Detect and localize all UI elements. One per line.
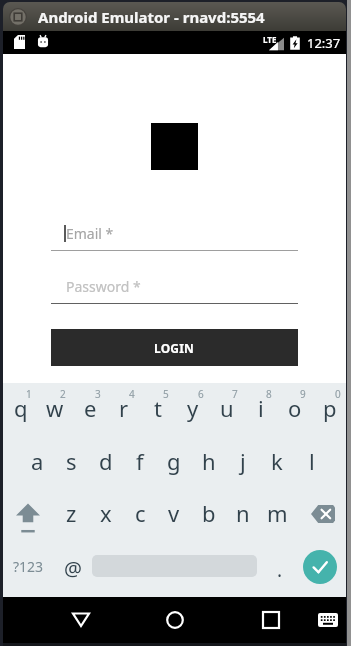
- button[interactable]: d: [89, 436, 123, 490]
- button[interactable]: Recents: [250, 599, 292, 641]
- button[interactable]: Show keyboard: [309, 604, 347, 636]
- staticText: ?123: [13, 557, 44, 576]
- staticText: v: [168, 498, 180, 528]
- staticText: 6: [198, 387, 204, 401]
- staticText: 9: [300, 387, 306, 401]
- button[interactable]: b: [192, 490, 226, 543]
- staticText: e: [84, 393, 97, 423]
- button[interactable]: h: [192, 436, 226, 490]
- staticText: r: [119, 393, 129, 423]
- button[interactable]: x: [89, 490, 123, 543]
- staticText: s: [66, 446, 77, 476]
- staticText: 3: [95, 387, 101, 401]
- button[interactable]: 2: [37, 383, 71, 436]
- button[interactable]: @: [55, 543, 89, 597]
- button[interactable]: l: [295, 436, 329, 490]
- button[interactable]: Back: [60, 598, 102, 640]
- button[interactable]: Window menu: [9, 8, 27, 26]
- staticText: LOGIN: [154, 340, 195, 356]
- staticText: n: [236, 498, 250, 528]
- button[interactable]: Enter: [303, 550, 337, 584]
- button[interactable]: Shift: [3, 490, 54, 543]
- staticText: g: [167, 446, 181, 476]
- staticText: 4: [129, 387, 135, 401]
- staticText: h: [202, 446, 216, 476]
- staticText: j: [240, 446, 246, 476]
- staticText: LTE: [263, 34, 277, 45]
- staticText: t: [154, 393, 162, 423]
- button[interactable]: s: [54, 436, 88, 490]
- staticText: 0: [335, 387, 341, 401]
- button[interactable]: .: [261, 543, 299, 597]
- staticText: u: [220, 393, 234, 423]
- staticText: 12:37: [307, 34, 341, 52]
- button[interactable]: v: [157, 490, 191, 543]
- staticText: k: [271, 446, 283, 476]
- staticText: p: [323, 393, 337, 423]
- button[interactable]: f: [123, 436, 157, 490]
- button[interactable]: ?123: [8, 543, 54, 597]
- button[interactable]: Backspace: [295, 490, 346, 543]
- staticText: w: [46, 393, 64, 423]
- button[interactable]: 6: [175, 383, 209, 436]
- button[interactable]: n: [226, 490, 260, 543]
- staticText: d: [99, 446, 113, 476]
- button[interactable]: a: [20, 436, 54, 490]
- staticText: b: [202, 498, 216, 528]
- staticText: y: [187, 393, 199, 423]
- button[interactable]: 5: [140, 383, 174, 436]
- staticText: m: [267, 498, 288, 528]
- staticText: .: [277, 557, 283, 583]
- button[interactable]: 0: [312, 383, 346, 436]
- staticText: l: [309, 446, 315, 476]
- button[interactable]: z: [54, 490, 88, 543]
- staticText: 1: [26, 387, 32, 401]
- button[interactable]: c: [123, 490, 157, 543]
- button[interactable]: Home: [154, 599, 196, 641]
- staticText: 8: [266, 387, 272, 401]
- staticText: 7: [232, 387, 238, 401]
- staticText: x: [100, 498, 112, 528]
- button[interactable]: 4: [106, 383, 140, 436]
- staticText: z: [66, 498, 77, 528]
- staticText: Password *: [66, 277, 141, 296]
- button[interactable]: g: [157, 436, 191, 490]
- button[interactable]: k: [260, 436, 294, 490]
- staticText: a: [31, 446, 44, 476]
- button[interactable]: LOGIN: [51, 329, 298, 366]
- staticText: 2: [60, 387, 66, 401]
- button[interactable]: 7: [209, 383, 243, 436]
- button[interactable]: j: [226, 436, 260, 490]
- staticText: c: [135, 498, 146, 528]
- staticText: o: [288, 393, 302, 423]
- staticText: q: [14, 393, 28, 423]
- staticText: Email *: [66, 224, 114, 243]
- button[interactable]: 1: [3, 383, 37, 436]
- button[interactable]: m: [260, 490, 294, 543]
- staticText: i: [258, 393, 264, 423]
- button[interactable]: 8: [243, 383, 277, 436]
- staticText: @: [64, 555, 82, 582]
- staticText: Android Emulator - rnavd:5554: [38, 7, 265, 27]
- button[interactable]: 3: [72, 383, 106, 436]
- staticText: 5: [163, 387, 169, 401]
- staticText: f: [136, 446, 144, 476]
- button[interactable]: 9: [277, 383, 311, 436]
